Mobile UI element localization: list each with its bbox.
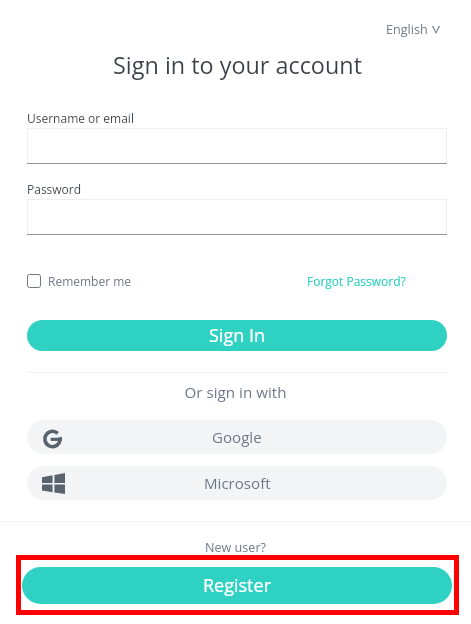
button[interactable]: Choose language: English	[383, 19, 443, 40]
button[interactable]	[27, 199, 447, 235]
other: Sign in with Google	[43, 428, 62, 450]
staticText: Sign in to your account	[2, 49, 471, 81]
button[interactable]: Remember me	[27, 272, 132, 290]
button[interactable]	[27, 128, 447, 164]
staticText: Microsoft	[204, 473, 271, 494]
staticText: Sign In	[209, 323, 265, 348]
button[interactable]: Microsoft	[27, 466, 447, 500]
staticText: Username or email	[27, 110, 134, 126]
button[interactable]: Sign In	[27, 320, 447, 351]
button[interactable]: Forgot Password?	[307, 273, 406, 289]
button[interactable]: Register	[22, 567, 452, 604]
staticText: New user?	[0, 539, 471, 556]
staticText: Register	[203, 573, 271, 598]
staticText: Password	[27, 181, 82, 197]
staticText: English	[386, 21, 428, 38]
button[interactable]: Google	[27, 420, 447, 454]
staticText: Remember me	[48, 273, 132, 289]
other: Sign in with Microsoft	[42, 473, 65, 494]
staticText: Google	[212, 427, 262, 448]
staticText: Or sign in with	[0, 382, 471, 403]
